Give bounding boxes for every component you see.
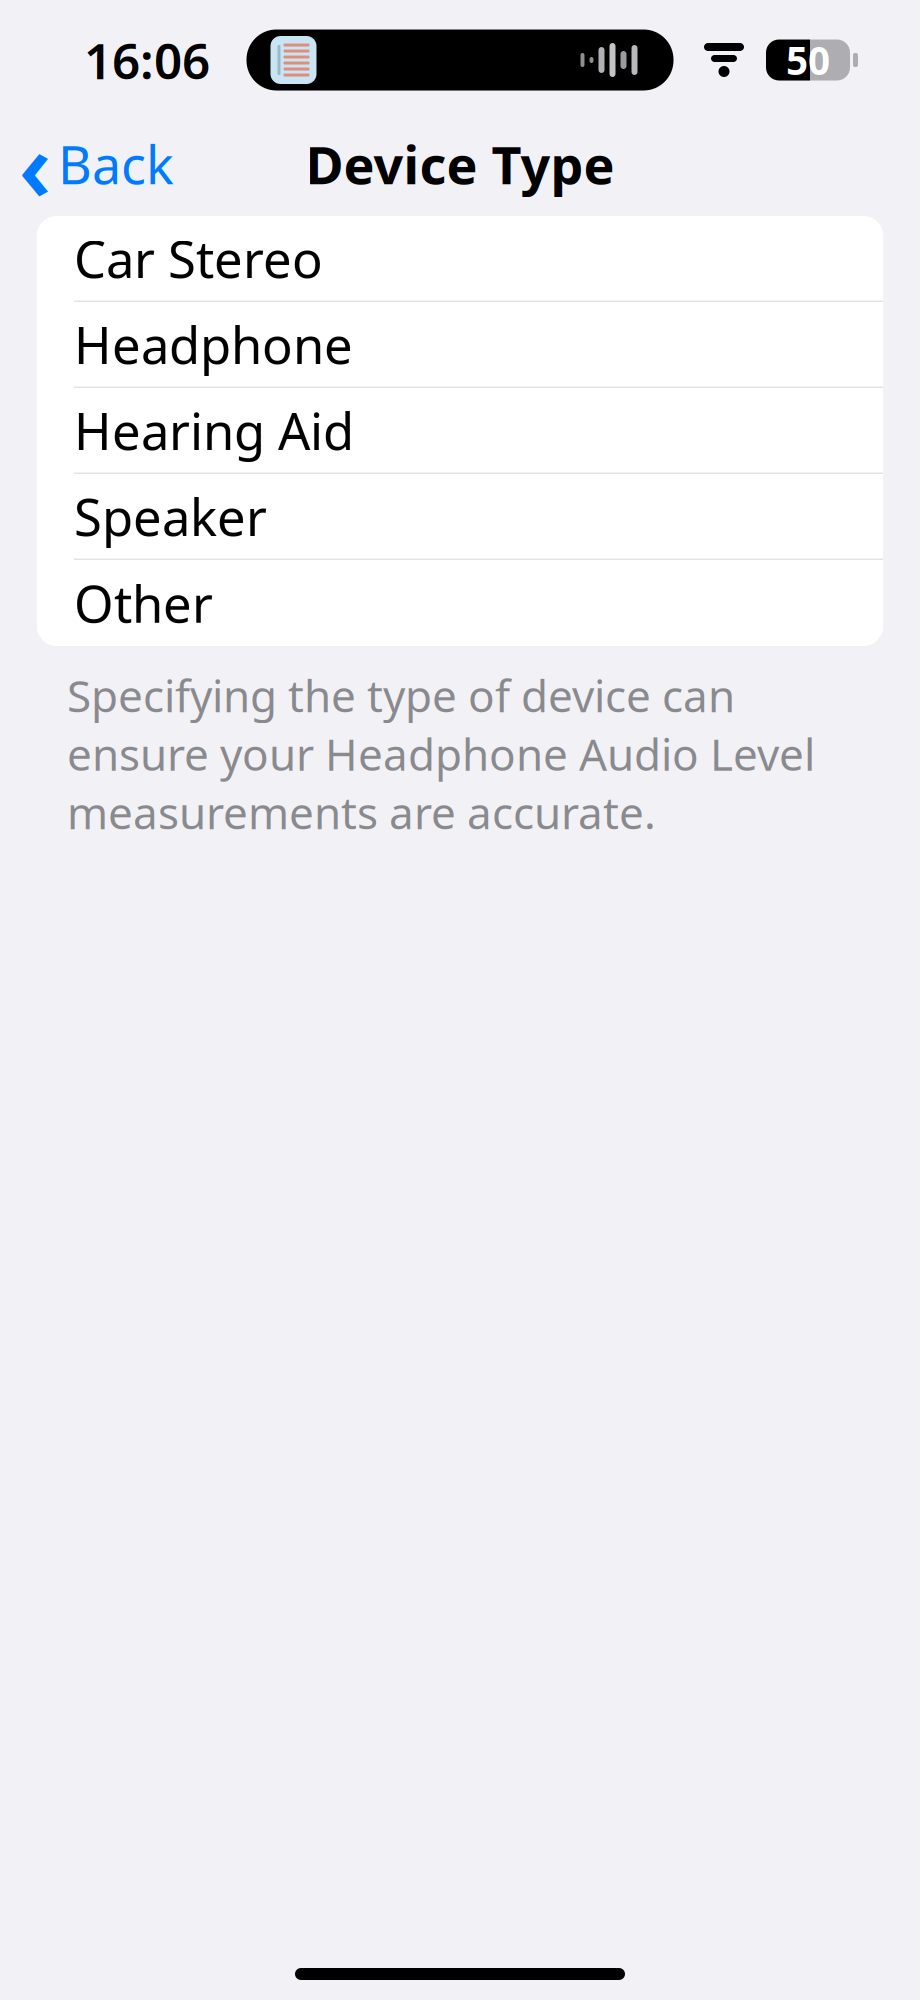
staticText: Specifying the type of device can ensure… [67,666,815,841]
button[interactable]: Headphone [37,302,883,388]
staticText: Headphone [74,311,353,378]
staticText: Car Stereo [74,225,323,292]
staticText: Back [58,129,174,199]
staticText: 50 [786,34,830,86]
staticText: ‹ [18,100,51,228]
staticText: Device Type [305,129,614,199]
staticText: Hearing Aid [74,397,354,464]
button[interactable]: Hearing Aid [37,388,883,474]
staticText: Other [74,569,213,637]
button[interactable]: Speaker [37,474,883,560]
button[interactable]: Other [37,560,883,646]
button[interactable]: Car Stereo [37,216,883,302]
staticText: Speaker [74,483,267,550]
staticText: 16:06 [84,27,210,93]
button[interactable]: ‹ [0,117,190,211]
